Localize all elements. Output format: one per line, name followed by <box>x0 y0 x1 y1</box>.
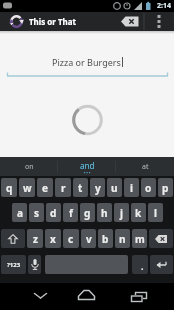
button[interactable]: w <box>19 178 35 197</box>
staticText: y <box>95 181 101 195</box>
staticText: k <box>135 206 142 220</box>
staticText: at <box>142 162 149 172</box>
staticText: e <box>42 181 48 195</box>
button[interactable]: v <box>81 229 96 248</box>
button[interactable]: q <box>1 178 17 197</box>
button[interactable]: t <box>73 178 88 197</box>
staticText: b <box>102 232 109 246</box>
staticText: i <box>130 181 133 195</box>
button[interactable]: o <box>141 178 156 197</box>
staticText: l <box>154 206 157 220</box>
button[interactable]: s <box>29 203 44 222</box>
button[interactable]: i <box>124 178 139 197</box>
button[interactable]: h <box>97 203 112 222</box>
staticText: t <box>78 181 83 195</box>
staticText: ?123 <box>7 261 21 269</box>
staticText: p <box>162 181 169 195</box>
button[interactable]: p <box>158 178 173 197</box>
staticText: r <box>61 181 66 195</box>
button[interactable]: y <box>90 178 105 197</box>
staticText: j <box>120 206 123 220</box>
button[interactable]: c <box>63 229 79 248</box>
staticText: w <box>23 181 32 195</box>
button[interactable] <box>116 12 144 31</box>
button[interactable]: u <box>107 178 122 197</box>
button[interactable]: f <box>63 203 78 222</box>
staticText: . <box>141 260 144 272</box>
staticText: o <box>145 181 152 195</box>
staticText: This or That <box>29 16 77 27</box>
button[interactable]: g <box>80 203 95 222</box>
staticText: c <box>68 232 74 246</box>
button[interactable]: k <box>131 203 146 222</box>
staticText: g <box>84 206 91 220</box>
button[interactable] <box>28 255 41 274</box>
button[interactable] <box>144 12 174 31</box>
button[interactable] <box>0 283 58 310</box>
button[interactable] <box>116 283 174 310</box>
staticText: n <box>119 232 126 246</box>
staticText: 2:14 <box>157 1 171 11</box>
button[interactable]: on <box>0 157 58 176</box>
button[interactable] <box>58 283 116 310</box>
button[interactable]: d <box>46 203 61 222</box>
button[interactable]: x <box>45 229 61 248</box>
staticText: on <box>25 162 34 172</box>
staticText: v <box>86 232 92 246</box>
button[interactable]: at <box>116 157 174 176</box>
staticText: f <box>69 206 73 220</box>
button[interactable]: z <box>27 229 43 248</box>
button[interactable]: b <box>98 229 113 248</box>
staticText: and <box>80 160 95 171</box>
staticText: q <box>6 181 13 195</box>
staticText: h <box>101 206 108 220</box>
staticText: a <box>17 206 23 220</box>
button[interactable] <box>150 255 173 274</box>
button[interactable]: . <box>132 255 148 274</box>
button[interactable] <box>149 229 173 248</box>
staticText: z <box>33 232 38 246</box>
button[interactable]: j <box>114 203 129 222</box>
button[interactable] <box>1 229 25 248</box>
button[interactable]: e <box>37 178 53 197</box>
button[interactable]: a <box>12 203 27 222</box>
button[interactable]: ?123 <box>1 255 26 274</box>
staticText: x <box>50 232 56 246</box>
staticText: s <box>34 206 40 220</box>
button[interactable]: m <box>132 229 147 248</box>
staticText: u <box>111 181 118 195</box>
button[interactable]: r <box>55 178 71 197</box>
button[interactable]: l <box>148 203 163 222</box>
button[interactable]: and <box>58 157 116 176</box>
button[interactable]: n <box>115 229 130 248</box>
staticText: m <box>135 232 145 246</box>
staticText: Pizza or Burgers <box>52 56 121 68</box>
staticText: d <box>50 206 57 220</box>
button[interactable] <box>9 14 24 29</box>
